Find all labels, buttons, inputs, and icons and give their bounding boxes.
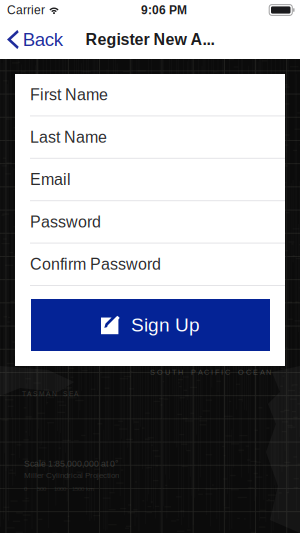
staticText: Email [30,171,71,188]
button[interactable]: Sign Up [31,299,270,351]
button[interactable]: First Name [15,74,285,116]
staticText: Carrier [7,3,45,17]
button[interactable]: Last Name [15,116,285,159]
staticText: Scale 1:85,000,000 at 0° [24,459,118,469]
staticText: Register New A... [85,31,214,48]
staticText: Back [23,29,63,50]
staticText: 9:06 PM [141,3,187,17]
staticText: Last Name [30,128,107,146]
staticText: Miller Cylindrical Projection [24,471,119,480]
staticText: Confirm Password [30,255,161,273]
staticText: T A S M A N S E A [22,390,78,398]
staticText: First Name [30,86,108,104]
button[interactable]: Password [15,201,285,244]
staticText: S O U T H P A C I F I C O C E A N [150,368,271,376]
button[interactable]: Back [0,20,71,59]
staticText: Password [30,213,101,231]
staticText: Sign Up [131,314,200,336]
button[interactable]: Confirm Password [15,244,285,286]
staticText: 0 500 1000 1500 km [24,486,94,492]
button[interactable]: Email [15,159,285,201]
